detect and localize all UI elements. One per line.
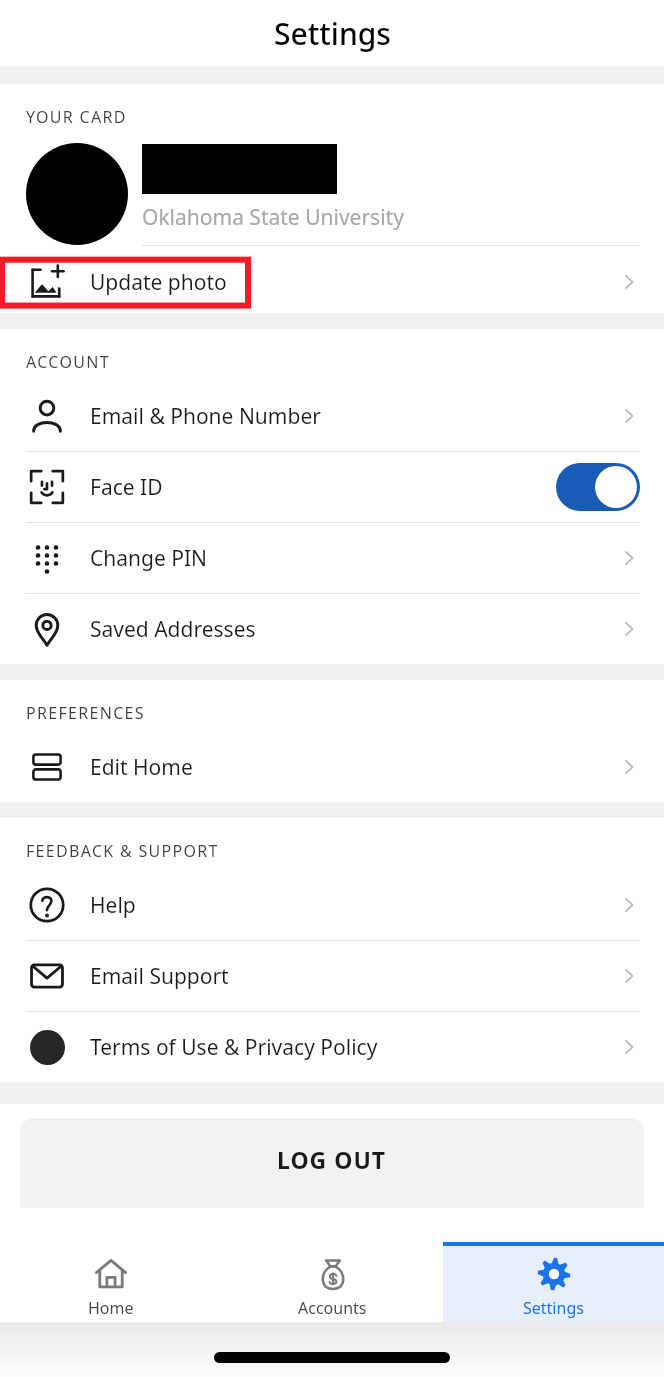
staticText: Home (88, 1297, 134, 1319)
staticText: Accounts (298, 1297, 367, 1319)
button[interactable]: Email Support (0, 941, 664, 1011)
button[interactable]: Face ID toggle, on (556, 463, 640, 511)
staticText: Saved Addresses (90, 615, 618, 644)
staticText: PREFERENCES (26, 702, 145, 724)
button[interactable]: Accounts (222, 1242, 443, 1322)
staticText: Edit Home (90, 753, 618, 782)
button[interactable]: Settings (443, 1242, 664, 1322)
staticText: Settings (523, 1297, 584, 1319)
staticText: Help (90, 891, 618, 920)
staticText: Face ID (90, 473, 556, 502)
staticText: FEEDBACK & SUPPORT (26, 840, 219, 862)
button[interactable]: Help (0, 870, 664, 940)
button[interactable]: Email & Phone Number (0, 381, 664, 451)
button[interactable]: Face ID (0, 452, 664, 522)
button[interactable]: Edit Home (0, 732, 664, 802)
staticText: LOG OUT (277, 1144, 387, 1175)
button[interactable]: Terms of Use & Privacy Policy (0, 1012, 664, 1082)
staticText: ACCOUNT (26, 351, 110, 373)
staticText: Email Support (90, 962, 618, 991)
button[interactable]: Update photo (0, 251, 664, 313)
staticText: YOUR CARD (26, 106, 127, 128)
staticText: Settings (274, 13, 391, 54)
staticText: Email & Phone Number (90, 402, 618, 431)
button[interactable]: LOG OUT (20, 1118, 644, 1208)
button[interactable]: Saved Addresses (0, 594, 664, 664)
staticText: Oklahoma State University (142, 203, 404, 232)
button[interactable]: Home (0, 1242, 222, 1322)
staticText: Change PIN (90, 544, 618, 573)
staticText: Terms of Use & Privacy Policy (90, 1033, 618, 1062)
button[interactable]: Change PIN (0, 523, 664, 593)
staticText: Update photo (90, 268, 618, 297)
